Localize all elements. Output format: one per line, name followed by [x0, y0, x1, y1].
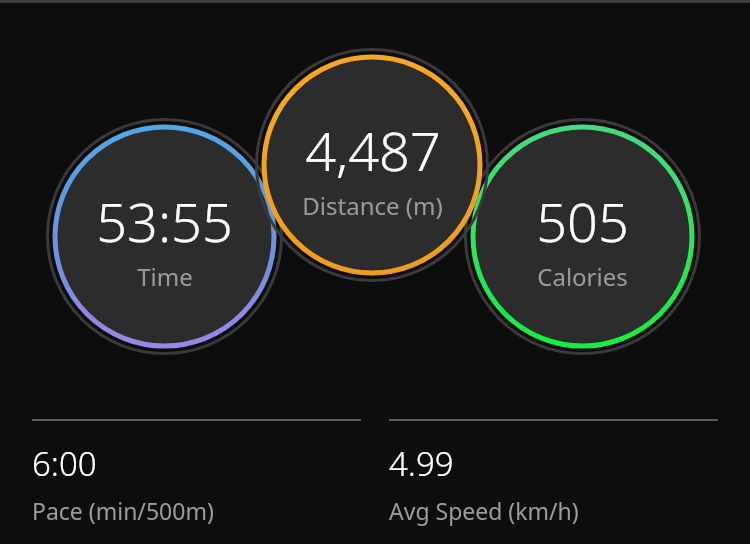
button[interactable]: Calories 505: [464, 118, 701, 355]
button[interactable]: Distance 4,487 metres: [255, 48, 489, 282]
staticText: Avg Speed (km/h): [389, 495, 579, 526]
staticText: Calories: [537, 260, 628, 293]
button[interactable]: 4.99: [389, 419, 718, 526]
staticText: Pace (min/500m): [32, 495, 214, 526]
staticText: 6:00: [32, 441, 97, 486]
button[interactable]: 6:00: [32, 419, 361, 526]
staticText: 505: [536, 184, 629, 258]
staticText: 4,487: [305, 113, 441, 187]
staticText: 53:55: [96, 184, 233, 258]
staticText: 4.99: [389, 441, 454, 486]
staticText: Distance (m): [302, 189, 443, 222]
staticText: Time: [137, 260, 193, 293]
button[interactable]: Time 53:55: [46, 118, 283, 355]
